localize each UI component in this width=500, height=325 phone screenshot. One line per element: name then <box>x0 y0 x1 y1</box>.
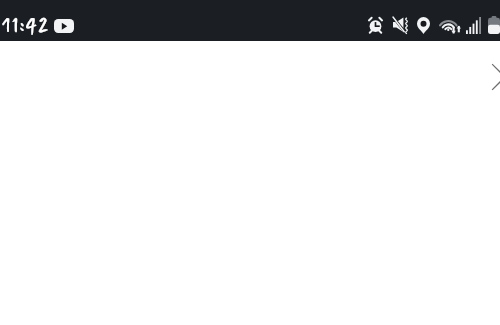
staticText: 11:42 <box>1 8 49 40</box>
button[interactable]: Close <box>481 53 500 101</box>
